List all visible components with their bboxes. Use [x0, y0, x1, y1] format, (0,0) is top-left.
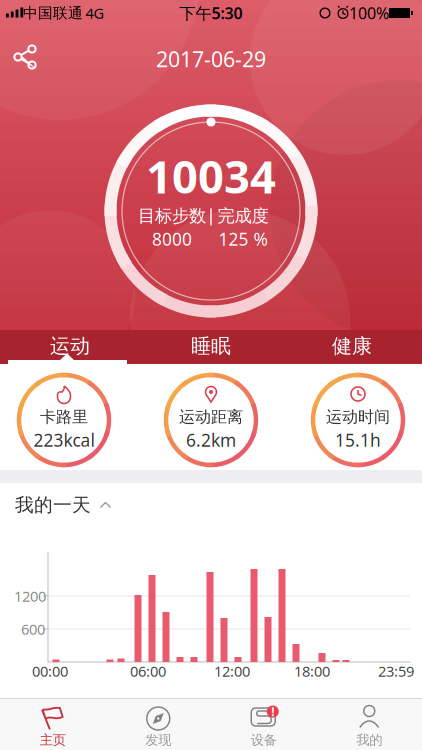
staticText: 8000	[152, 227, 192, 250]
staticText: 完成度	[217, 205, 268, 227]
staticText: 18:00	[294, 661, 330, 681]
button[interactable]: Share	[3, 35, 47, 79]
staticText: 我的	[356, 732, 382, 748]
staticText: !	[271, 703, 274, 719]
staticText: 23:59	[378, 661, 414, 681]
staticText: 2017-06-29	[156, 45, 266, 73]
staticText: 600	[21, 619, 45, 639]
staticText: 运动距离	[179, 407, 243, 427]
staticText: 1200	[14, 586, 46, 606]
button[interactable]: 睡眠	[141, 329, 281, 363]
staticText: 10034	[146, 146, 276, 206]
button[interactable]: 我的	[317, 699, 422, 750]
staticText: 6.2km	[186, 428, 236, 451]
staticText: 4G	[85, 3, 104, 23]
staticText: 主页	[40, 732, 66, 748]
staticText: 15.1h	[335, 428, 381, 451]
staticText: 睡眠	[191, 334, 231, 358]
staticText: 100%	[349, 2, 389, 24]
staticText: 下午5:30	[179, 2, 242, 24]
staticText: 223kcal	[33, 428, 94, 451]
staticText: 健康	[332, 334, 372, 358]
staticText: 运动时间	[326, 407, 390, 427]
staticText: 我的一天	[15, 493, 91, 516]
staticText: 卡路里	[40, 407, 88, 427]
staticText: 运动	[50, 334, 90, 358]
staticText: 发现	[145, 732, 171, 748]
staticText: 目标步数	[138, 205, 206, 227]
staticText: 设备	[251, 732, 277, 748]
button[interactable]: 发现	[106, 699, 211, 750]
staticText: 中国联通	[23, 4, 83, 22]
button[interactable]: !	[211, 699, 316, 750]
button[interactable]: 健康	[282, 329, 422, 363]
button[interactable]: 运动	[0, 329, 140, 363]
staticText: 00:00	[32, 661, 68, 681]
staticText: 06:00	[130, 661, 166, 681]
staticText: 12:00	[214, 661, 250, 681]
button[interactable]: 我的一天	[8, 488, 118, 522]
staticText: 125 %	[218, 227, 267, 250]
button[interactable]: 主页	[0, 699, 105, 750]
